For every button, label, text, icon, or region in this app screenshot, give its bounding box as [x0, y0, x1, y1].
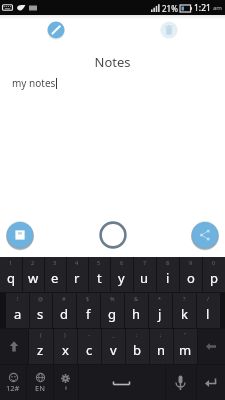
staticText: 8: [166, 259, 170, 266]
staticText: *: [158, 295, 162, 302]
button[interactable]: 7: [133, 257, 156, 292]
button[interactable]: Symbols: [0, 365, 26, 400]
staticText: 2: [31, 259, 35, 266]
button[interactable]: 5: [88, 257, 110, 292]
button[interactable]: 3: [44, 257, 66, 292]
button[interactable]: Language: [26, 365, 53, 400]
button[interactable]: 6: [110, 257, 133, 292]
staticText: w: [28, 269, 39, 287]
staticText: ;: [160, 331, 162, 338]
button[interactable]: 2: [22, 257, 44, 292]
staticText: 6: [120, 259, 124, 266]
button[interactable]: (: [28, 329, 53, 364]
button[interactable]: %: [100, 293, 124, 328]
staticText: (: [40, 331, 42, 338]
staticText: j: [158, 305, 162, 323]
button[interactable]: /: [196, 293, 220, 328]
staticText: 12#: [6, 383, 20, 393]
staticText: 4: [75, 259, 79, 266]
staticText: a: [14, 305, 22, 323]
staticText: -: [88, 331, 90, 338]
button[interactable]: ): [53, 329, 77, 364]
staticText: :: [136, 331, 138, 338]
button[interactable]: _: [101, 329, 125, 364]
staticText: %: [110, 295, 115, 302]
staticText: 3: [53, 259, 57, 266]
button[interactable]: ;: [149, 329, 173, 364]
button[interactable]: ?: [172, 293, 196, 328]
button[interactable]: Shift: [0, 329, 28, 364]
staticText: ?: [183, 295, 186, 302]
button[interactable]: Enter: [196, 365, 225, 400]
staticText: $: [86, 295, 90, 302]
staticText: ): [64, 331, 66, 338]
staticText: am: [213, 4, 222, 12]
staticText: t: [97, 269, 102, 287]
button[interactable]: @: [29, 293, 52, 328]
staticText: v: [110, 341, 117, 359]
button[interactable]: :: [125, 329, 149, 364]
button[interactable]: Backspace: [197, 329, 225, 364]
staticText: d: [60, 305, 68, 323]
staticText: o: [187, 269, 195, 287]
staticText: 21%: [162, 3, 178, 14]
staticText: 9: [189, 259, 193, 266]
staticText: ": [184, 331, 187, 338]
button[interactable]: &: [124, 293, 148, 328]
button[interactable]: Settings: [53, 365, 78, 400]
button[interactable]: Delete note: [160, 21, 178, 39]
button[interactable]: 4: [66, 257, 88, 292]
button[interactable]: *: [148, 293, 172, 328]
staticText: &: [134, 295, 139, 302]
staticText: h: [132, 305, 141, 323]
button[interactable]: ": [173, 329, 197, 364]
staticText: m: [179, 341, 192, 359]
button[interactable]: #: [52, 293, 76, 328]
button[interactable]: Space: [78, 365, 165, 400]
button[interactable]: Voice input: [165, 365, 196, 400]
button[interactable]: $: [76, 293, 100, 328]
staticText: l: [206, 305, 210, 323]
staticText: #: [62, 295, 66, 302]
staticText: q: [7, 269, 15, 287]
staticText: r: [74, 269, 80, 287]
button[interactable]: Home: [99, 221, 127, 249]
staticText: 0: [212, 259, 216, 266]
button[interactable]: -: [77, 329, 101, 364]
staticText: !: [17, 295, 19, 302]
staticText: k: [181, 305, 188, 323]
staticText: 1: [9, 259, 13, 266]
staticText: z: [37, 341, 44, 359]
staticText: g: [108, 305, 116, 323]
staticText: n: [157, 341, 166, 359]
staticText: y: [118, 269, 125, 287]
staticText: /: [207, 295, 210, 302]
button[interactable]: !: [6, 293, 29, 328]
button[interactable]: Edit note: [47, 21, 65, 39]
staticText: p: [210, 269, 218, 287]
staticText: i: [166, 269, 170, 287]
staticText: e: [51, 269, 59, 287]
button[interactable]: Save: [6, 221, 34, 249]
staticText: f: [86, 305, 91, 323]
button[interactable]: 0: [202, 257, 225, 292]
button[interactable]: 9: [179, 257, 202, 292]
button[interactable]: 1: [0, 257, 22, 292]
staticText: b: [133, 341, 141, 359]
staticText: x: [62, 341, 69, 359]
button[interactable]: Share: [191, 221, 219, 249]
button[interactable]: 8: [156, 257, 179, 292]
staticText: 7: [143, 259, 147, 266]
staticText: EN: [35, 383, 45, 393]
staticText: c: [86, 341, 93, 359]
staticText: 5: [97, 259, 101, 266]
staticText: 1:21: [194, 2, 211, 14]
staticText: _: [112, 331, 115, 338]
staticText: my notes: [12, 76, 56, 90]
staticText: s: [37, 305, 44, 323]
staticText: @: [38, 295, 43, 302]
staticText: u: [140, 269, 149, 287]
staticText: Notes: [0, 53, 225, 71]
